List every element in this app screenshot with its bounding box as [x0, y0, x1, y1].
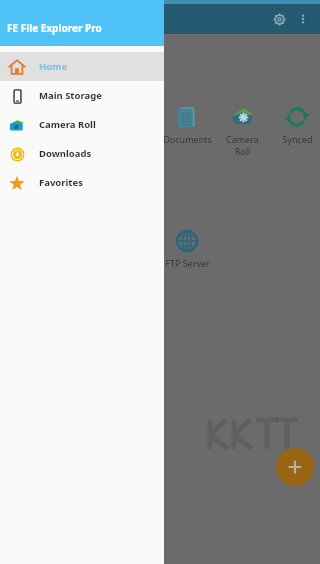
- button[interactable]: Favorites: [0, 168, 164, 197]
- button[interactable]: Main Storage: [0, 81, 164, 110]
- staticText: Documents: [163, 133, 212, 145]
- button[interactable]: More options: [292, 8, 314, 30]
- button[interactable]: Add: [276, 448, 314, 486]
- staticText: Home: [39, 60, 68, 73]
- staticText: Synced: [282, 133, 313, 145]
- staticText: Favorites: [39, 176, 83, 189]
- button[interactable]: Camera Roll: [215, 104, 269, 157]
- button[interactable]: FTP Server: [160, 228, 214, 269]
- staticText: Camera Roll: [39, 118, 96, 131]
- staticText: FTP Server: [165, 257, 210, 269]
- button[interactable]: Synced: [270, 104, 320, 145]
- staticText: Camera Roll: [226, 133, 259, 157]
- button[interactable]: Downloads: [0, 139, 164, 168]
- button[interactable]: Camera Roll: [0, 110, 164, 139]
- staticText: Main Storage: [39, 89, 102, 102]
- button[interactable]: Settings: [266, 6, 292, 32]
- button[interactable]: Home: [0, 52, 164, 81]
- staticText: FE File Explorer Pro: [7, 21, 102, 35]
- button[interactable]: Documents: [160, 104, 214, 145]
- staticText: Downloads: [39, 147, 92, 160]
